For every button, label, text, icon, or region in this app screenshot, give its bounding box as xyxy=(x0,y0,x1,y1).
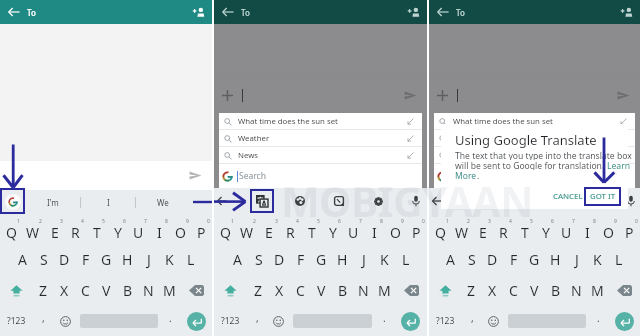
button[interactable]: N xyxy=(138,275,159,306)
button[interactable]: , xyxy=(33,306,54,336)
button[interactable]: E xyxy=(472,214,493,244)
button[interactable]: Shift xyxy=(0,275,33,306)
button[interactable]: Y xyxy=(322,214,343,244)
button[interactable]: Translate xyxy=(248,188,276,214)
button[interactable]: Send xyxy=(189,169,202,182)
button[interactable]: N xyxy=(353,275,374,306)
button[interactable]: O xyxy=(385,214,406,244)
button[interactable]: Enter xyxy=(394,306,427,336)
button[interactable]: Shift xyxy=(214,275,247,306)
button[interactable]: X xyxy=(269,275,290,306)
button[interactable]: Back xyxy=(7,5,21,19)
button[interactable]: B xyxy=(545,275,566,306)
button[interactable]: I xyxy=(577,214,598,244)
button[interactable]: H xyxy=(545,244,566,275)
button[interactable]: News xyxy=(434,147,635,164)
button[interactable]: H xyxy=(117,244,138,275)
button[interactable]: R xyxy=(280,214,301,244)
button[interactable]: I xyxy=(364,214,385,244)
button[interactable]: J xyxy=(353,244,374,275)
button[interactable]: D xyxy=(269,244,290,275)
button[interactable]: Voice input xyxy=(402,188,430,214)
button[interactable]: J xyxy=(566,244,587,275)
button[interactable]: M xyxy=(159,275,180,306)
button[interactable]: Space xyxy=(289,306,375,336)
button[interactable]: . xyxy=(375,306,394,336)
button[interactable]: CANCEL xyxy=(551,188,585,205)
button[interactable]: R xyxy=(493,214,514,244)
button[interactable]: What time does the sun set xyxy=(434,113,635,130)
button[interactable]: A xyxy=(12,244,33,275)
button[interactable]: G xyxy=(524,244,545,275)
button[interactable]: L xyxy=(608,244,629,275)
button[interactable]: X xyxy=(482,275,503,306)
button[interactable]: L xyxy=(180,244,201,275)
button[interactable]: Search xyxy=(219,164,422,188)
button[interactable]: Add participant xyxy=(407,6,420,19)
button[interactable]: Emoji xyxy=(267,306,289,336)
button[interactable]: C xyxy=(503,275,524,306)
button[interactable]: Space xyxy=(76,306,161,336)
button[interactable]: ?123 xyxy=(429,306,462,336)
button[interactable]: S xyxy=(248,244,269,275)
button[interactable]: W xyxy=(236,214,258,244)
button[interactable]: B xyxy=(117,275,138,306)
button[interactable]: I'm xyxy=(25,190,80,214)
button[interactable]: E xyxy=(44,214,65,244)
button[interactable]: Z xyxy=(33,275,54,306)
button[interactable]: P xyxy=(191,214,212,244)
button[interactable]: Weather xyxy=(219,130,422,147)
button[interactable]: D xyxy=(54,244,75,275)
button[interactable]: K xyxy=(587,244,608,275)
button[interactable]: J xyxy=(138,244,159,275)
button[interactable]: Back xyxy=(436,5,450,19)
button[interactable]: GOT IT xyxy=(584,187,621,206)
button[interactable]: T xyxy=(514,214,535,244)
button[interactable]: , xyxy=(462,306,482,336)
button[interactable]: Settings xyxy=(364,188,392,214)
button[interactable]: ?123 xyxy=(0,306,33,336)
button[interactable]: Themes xyxy=(501,188,529,214)
button[interactable]: G xyxy=(311,244,332,275)
button[interactable]: Back to keyboard xyxy=(431,195,443,207)
button[interactable]: Z xyxy=(247,275,269,306)
button[interactable]: R xyxy=(65,214,86,244)
button[interactable]: Themes xyxy=(286,188,314,214)
button[interactable]: ?123 xyxy=(214,306,247,336)
button[interactable]: S xyxy=(33,244,54,275)
button[interactable]: N xyxy=(566,275,587,306)
button[interactable]: . xyxy=(161,306,180,336)
button[interactable]: Backspace xyxy=(395,275,427,306)
button[interactable]: Space xyxy=(504,306,589,336)
button[interactable]: Stickers xyxy=(540,188,568,214)
button[interactable]: , xyxy=(247,306,267,336)
button[interactable]: M xyxy=(587,275,608,306)
button[interactable]: W xyxy=(22,214,44,244)
button[interactable]: Y xyxy=(535,214,556,244)
button[interactable]: U xyxy=(128,214,149,244)
button[interactable]: P xyxy=(406,214,427,244)
button[interactable]: News xyxy=(219,147,422,164)
button[interactable]: . xyxy=(589,306,608,336)
button[interactable]: F xyxy=(503,244,524,275)
button[interactable]: Add participant xyxy=(192,6,205,19)
button[interactable]: I xyxy=(149,214,170,244)
button[interactable]: Back to keyboard xyxy=(216,195,228,207)
button[interactable]: X xyxy=(54,275,75,306)
button[interactable]: V xyxy=(311,275,332,306)
button[interactable]: What time does the sun set xyxy=(219,113,422,130)
button[interactable]: C xyxy=(290,275,311,306)
button[interactable]: F xyxy=(290,244,311,275)
button[interactable]: Q xyxy=(0,214,22,244)
button[interactable]: Backspace xyxy=(180,275,212,306)
button[interactable]: Q xyxy=(429,214,451,244)
button[interactable]: M xyxy=(374,275,395,306)
button[interactable]: A xyxy=(440,244,461,275)
button[interactable]: L xyxy=(395,244,416,275)
button[interactable]: Search xyxy=(434,164,635,188)
button[interactable]: O xyxy=(170,214,191,244)
button[interactable]: Enter xyxy=(608,306,640,336)
button[interactable]: D xyxy=(482,244,503,275)
button[interactable]: G xyxy=(96,244,117,275)
button[interactable]: Settings xyxy=(579,188,607,214)
